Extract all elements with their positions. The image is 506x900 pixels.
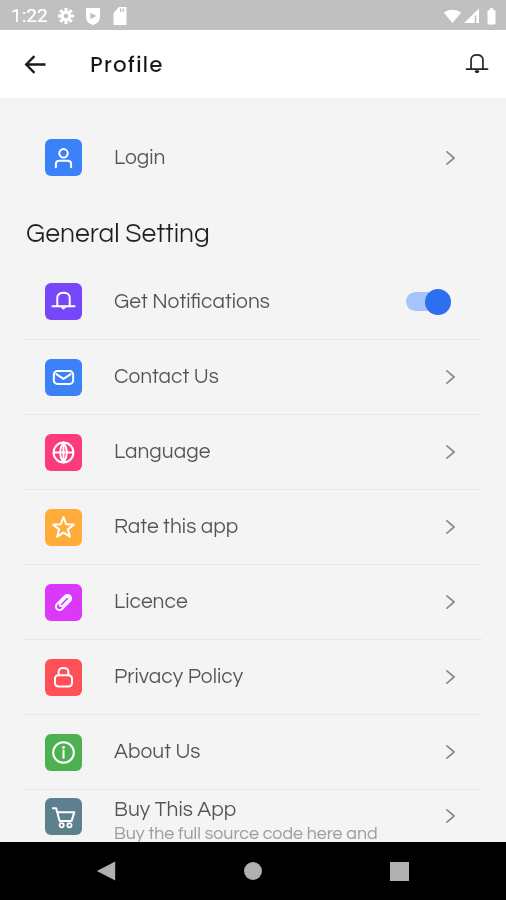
button[interactable]: About Us	[0, 715, 506, 789]
button[interactable]: Contact Us	[0, 340, 506, 414]
staticText: Buy This App	[114, 799, 237, 821]
button[interactable]: Rate this app	[0, 490, 506, 564]
staticText: General Setting	[26, 220, 210, 247]
staticText: Privacy Policy	[114, 666, 244, 688]
button[interactable]: Back	[86, 851, 126, 891]
button[interactable]: Get Notifications	[0, 264, 506, 339]
button[interactable]: Recent apps	[379, 851, 419, 891]
button[interactable]: Notifications	[456, 43, 498, 85]
button[interactable]: Language	[0, 415, 506, 489]
staticText: Rate this app	[114, 516, 239, 538]
staticText: Buy the full source code here and	[114, 824, 378, 842]
staticText: About Us	[114, 741, 201, 763]
staticText: Get Notifications	[114, 291, 406, 313]
staticText: Login	[114, 147, 166, 169]
staticText: Profile	[90, 49, 164, 79]
button[interactable]: Privacy Policy	[0, 640, 506, 714]
button[interactable]: Login	[0, 120, 506, 195]
button[interactable]: Home	[233, 851, 273, 891]
staticText: 1:22	[11, 4, 48, 26]
staticText: Language	[114, 441, 211, 463]
staticText: Licence	[114, 591, 188, 613]
button[interactable]: Buy This App	[0, 790, 506, 842]
button[interactable]: Licence	[0, 565, 506, 639]
button[interactable]: Back	[14, 43, 56, 85]
staticText: Contact Us	[114, 366, 219, 388]
